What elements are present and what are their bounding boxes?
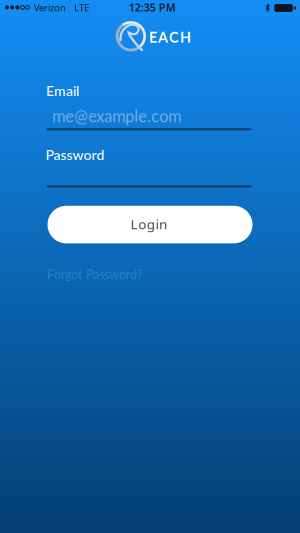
staticText: Verizon [34,1,66,14]
staticText: Email [46,82,79,99]
staticText: Password [45,146,104,163]
staticText: LTE [74,1,89,14]
button[interactable]: Forgot Password? [47,267,145,282]
staticText: EACH [149,28,191,46]
staticText: 12:35 PM [129,0,176,14]
staticText: Login [131,215,167,233]
button[interactable]: Login [47,205,252,245]
staticText: Forgot Password? [47,267,143,282]
staticText: me@example.com [52,106,181,126]
